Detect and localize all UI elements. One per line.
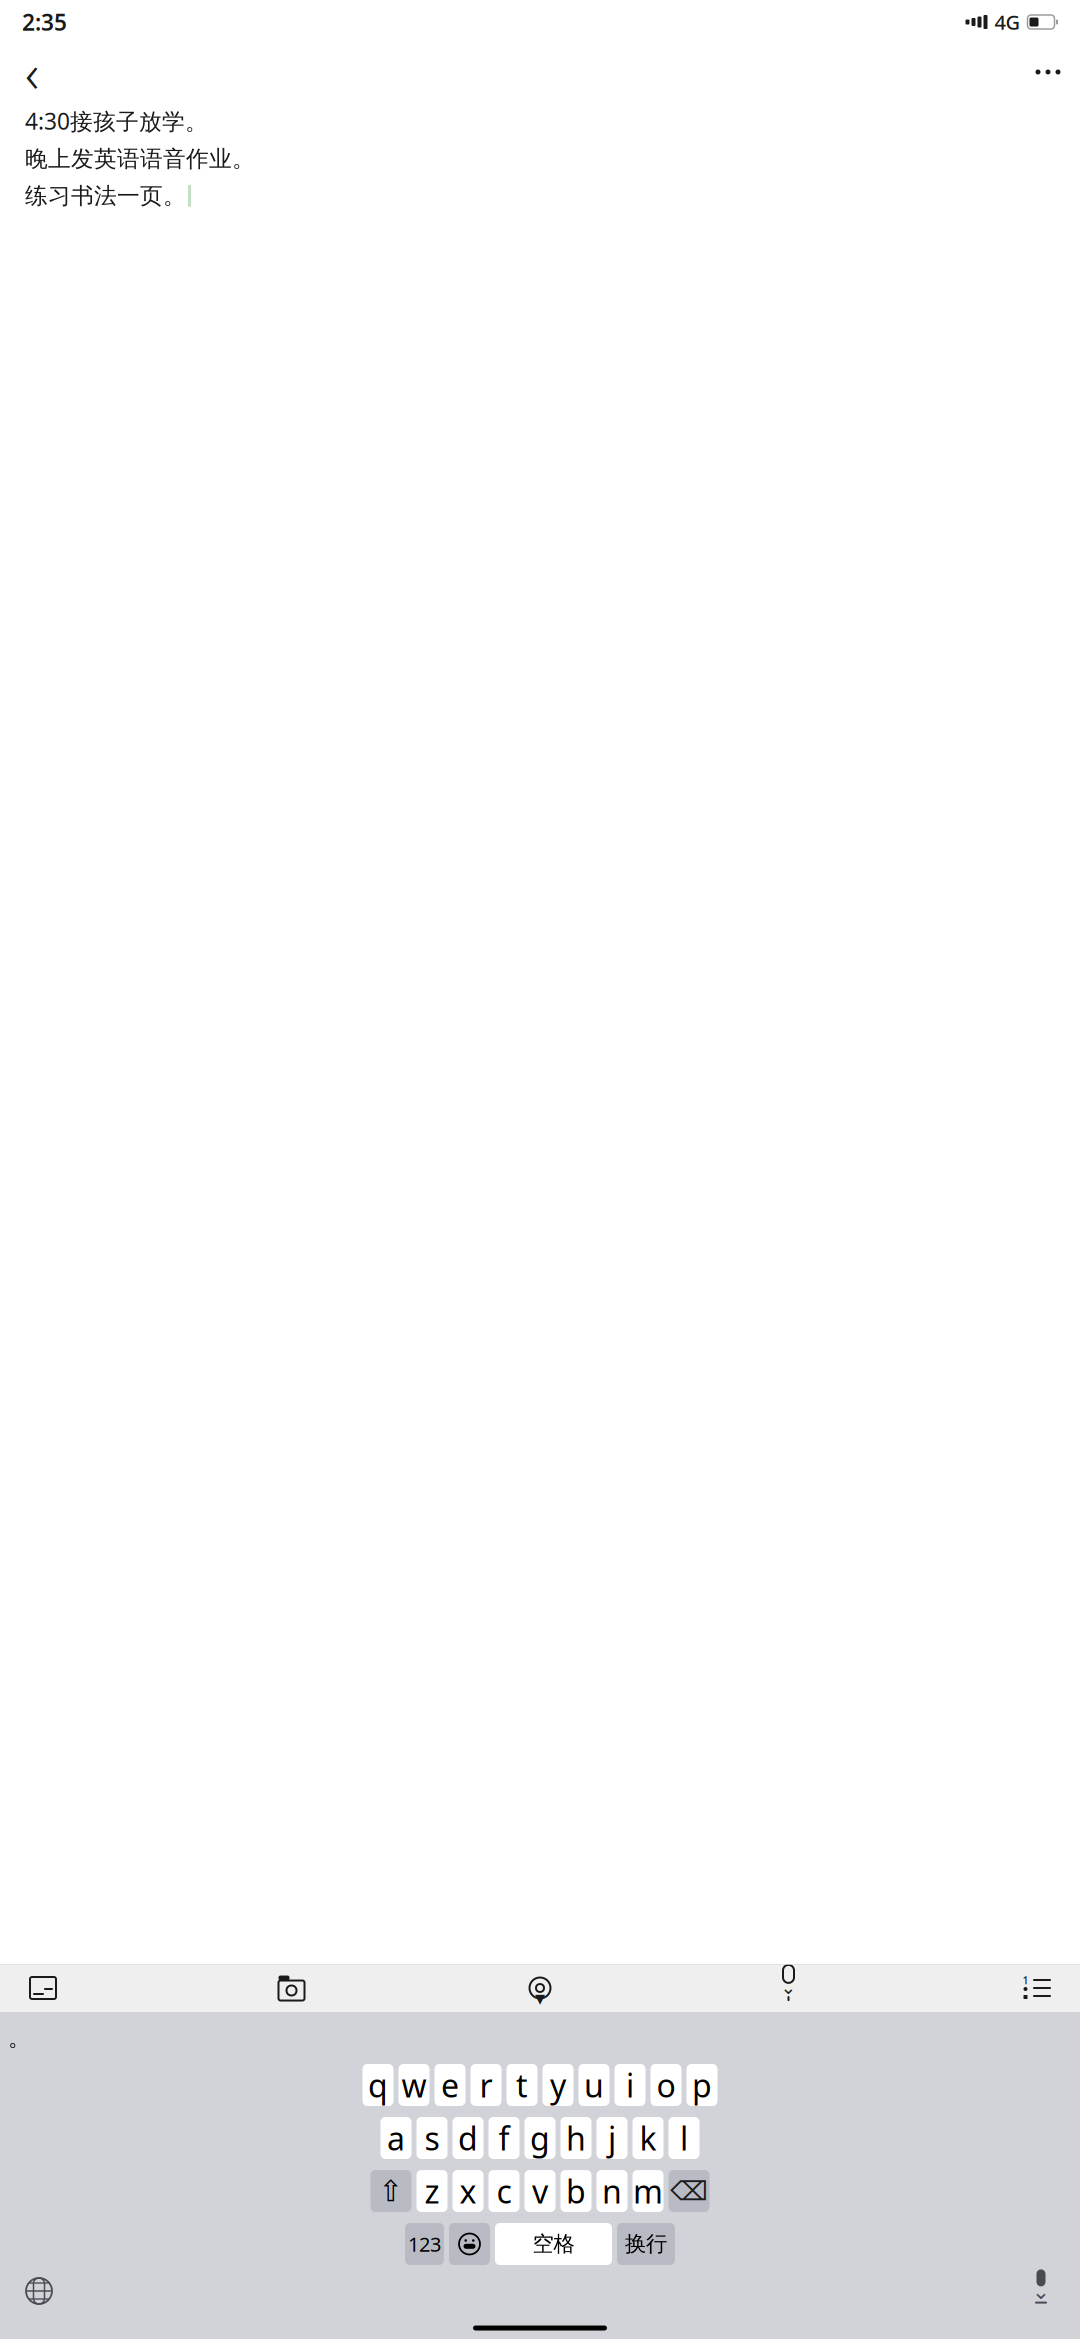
staticText: ‹: [25, 37, 39, 107]
button[interactable]: j: [596, 2117, 627, 2159]
button[interactable]: Switch keyboard: [16, 2270, 62, 2312]
button[interactable]: 换行: [617, 2223, 675, 2265]
button[interactable]: z: [416, 2170, 447, 2212]
staticText: u: [584, 2064, 604, 2106]
button[interactable]: Shift: [370, 2170, 411, 2212]
staticText: 123: [408, 2231, 441, 2257]
button[interactable]: i: [614, 2064, 645, 2106]
staticText: 2:35: [22, 7, 67, 37]
staticText: v: [532, 2170, 548, 2212]
staticText: 。: [8, 2024, 31, 2052]
staticText: 4G: [994, 9, 1020, 35]
button[interactable]: y: [542, 2064, 573, 2106]
staticText: ⌫: [670, 2176, 708, 2206]
button[interactable]: l: [668, 2117, 699, 2159]
staticText: t: [516, 2064, 528, 2106]
staticText: z: [424, 2170, 439, 2212]
button[interactable]: s: [416, 2117, 447, 2159]
staticText: ⌄: [780, 1977, 796, 1998]
button[interactable]: Take photo: [260, 1964, 322, 2012]
staticText: ⌄: [1032, 2279, 1050, 2304]
button[interactable]: 123: [405, 2223, 444, 2265]
button[interactable]: Back: [6, 46, 58, 98]
staticText: c: [496, 2170, 511, 2212]
staticText: o: [656, 2064, 675, 2106]
staticText: d: [458, 2117, 478, 2159]
staticText: q: [368, 2064, 388, 2106]
staticText: k: [639, 2117, 656, 2159]
button[interactable]: k: [632, 2117, 663, 2159]
button[interactable]: Checklist: [1006, 1964, 1068, 2012]
button[interactable]: f: [488, 2117, 519, 2159]
staticText: m: [633, 2170, 663, 2212]
button[interactable]: m: [632, 2170, 663, 2212]
button[interactable]: t: [506, 2064, 537, 2106]
button[interactable]: c: [488, 2170, 519, 2212]
staticText: p: [692, 2064, 712, 2106]
staticText: b: [566, 2170, 586, 2212]
button[interactable]: More options: [1022, 46, 1074, 98]
button[interactable]: Voice input: [757, 1964, 819, 2012]
staticText: 晚上发英语语音作业。: [25, 145, 255, 173]
button[interactable]: q: [362, 2064, 393, 2106]
button[interactable]: Emoji: [449, 2223, 490, 2265]
staticText: g: [530, 2117, 550, 2159]
button[interactable]: a: [380, 2117, 411, 2159]
button[interactable]: p: [686, 2064, 717, 2106]
button[interactable]: Add location: [509, 1964, 571, 2012]
staticText: w: [401, 2064, 426, 2106]
button[interactable]: o: [650, 2064, 681, 2106]
button[interactable]: r: [470, 2064, 501, 2106]
staticText: l: [680, 2117, 688, 2159]
staticText: ▾: [535, 1987, 545, 2009]
button[interactable]: 空格: [495, 2223, 612, 2265]
staticText: 换行: [625, 2231, 667, 2257]
staticText: ⇧: [378, 2174, 403, 2208]
staticText: 4:30接孩子放学。: [25, 106, 208, 136]
staticText: f: [498, 2117, 509, 2159]
staticText: 空格: [532, 2231, 574, 2257]
staticText: 练习书法一页。: [25, 182, 186, 210]
button[interactable]: x: [452, 2170, 483, 2212]
staticText: y: [550, 2064, 566, 2106]
button[interactable]: n: [596, 2170, 627, 2212]
staticText: n: [602, 2170, 622, 2212]
staticText: s: [424, 2117, 439, 2159]
button[interactable]: v: [524, 2170, 555, 2212]
staticText: i: [626, 2064, 634, 2106]
button[interactable]: Delete: [668, 2170, 709, 2212]
staticText: a: [387, 2117, 405, 2159]
button[interactable]: u: [578, 2064, 609, 2106]
button[interactable]: g: [524, 2117, 555, 2159]
button[interactable]: Insert photo: [12, 1964, 74, 2012]
staticText: h: [566, 2117, 586, 2159]
button[interactable]: Dictation: [1018, 2270, 1064, 2312]
staticText: x: [459, 2170, 476, 2212]
button[interactable]: d: [452, 2117, 483, 2159]
staticText: e: [441, 2064, 459, 2106]
staticText: r: [479, 2064, 492, 2106]
staticText: 1: [1022, 1973, 1028, 1987]
button[interactable]: b: [560, 2170, 591, 2212]
staticText: j: [608, 2117, 616, 2159]
button[interactable]: h: [560, 2117, 591, 2159]
button[interactable]: w: [398, 2064, 429, 2106]
button[interactable]: e: [434, 2064, 465, 2106]
